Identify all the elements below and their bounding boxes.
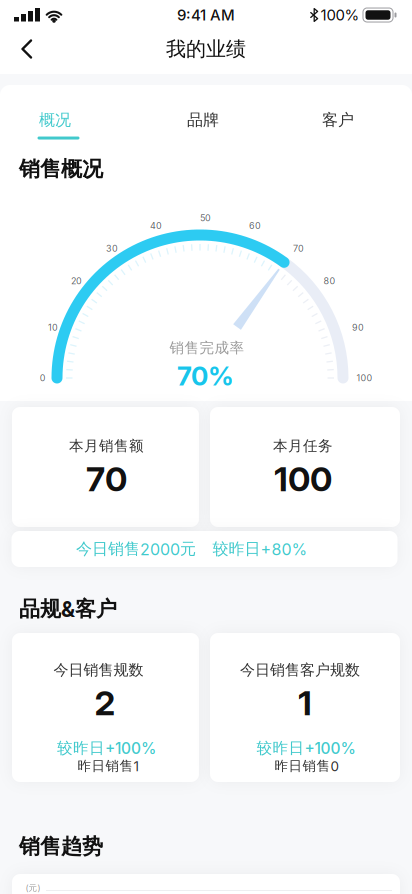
staticText: 较昨日+100% [57,738,156,758]
staticText: 70 [86,458,127,499]
staticText: 今日销售2000元 [76,539,196,559]
staticText: 90 [352,322,364,333]
staticText: 10 [48,322,58,333]
staticText: 昨日销售1 [77,757,138,774]
staticText: 70 [293,243,304,254]
staticText: 50 [200,213,211,223]
staticText: 销售概况 [19,156,103,182]
staticText: 80 [323,276,335,286]
staticText: 40 [150,220,162,231]
staticText: 100% [320,6,359,24]
staticText: 30 [106,243,118,254]
staticText: 2 [94,682,115,723]
staticText: 70% [177,360,234,392]
staticText: 100 [356,373,372,383]
staticText: 较昨日+100% [256,738,355,758]
staticText: 1 [298,682,312,723]
staticText: 100 [274,458,332,499]
staticText: 我的业绩 [166,36,246,62]
staticText: 品规&客户 [19,596,117,622]
staticText: 60 [249,220,261,231]
staticText: 销售完成率 [169,339,244,357]
staticText: 概况 [39,110,71,130]
staticText: 本月任务 [273,437,333,455]
staticText: 销售趋势 [19,833,103,860]
button[interactable]: Back [16,37,40,61]
staticText: 较昨日+80% [212,539,307,559]
staticText: 今日销售客户规数 [240,661,360,679]
button[interactable]: 品牌 [163,100,243,140]
staticText: 昨日销售0 [274,757,339,774]
button[interactable]: 客户 [298,100,378,140]
button[interactable]: 概况 [15,100,95,140]
staticText: (元) [25,883,40,893]
staticText: 今日销售规数 [53,661,143,679]
staticText: 20 [71,276,82,286]
staticText: 本月销售额 [69,437,144,455]
staticText: 品牌 [187,110,219,130]
staticText: 9:41 AM [177,6,235,24]
staticText: 0 [40,373,46,383]
staticText: 客户 [322,110,354,130]
